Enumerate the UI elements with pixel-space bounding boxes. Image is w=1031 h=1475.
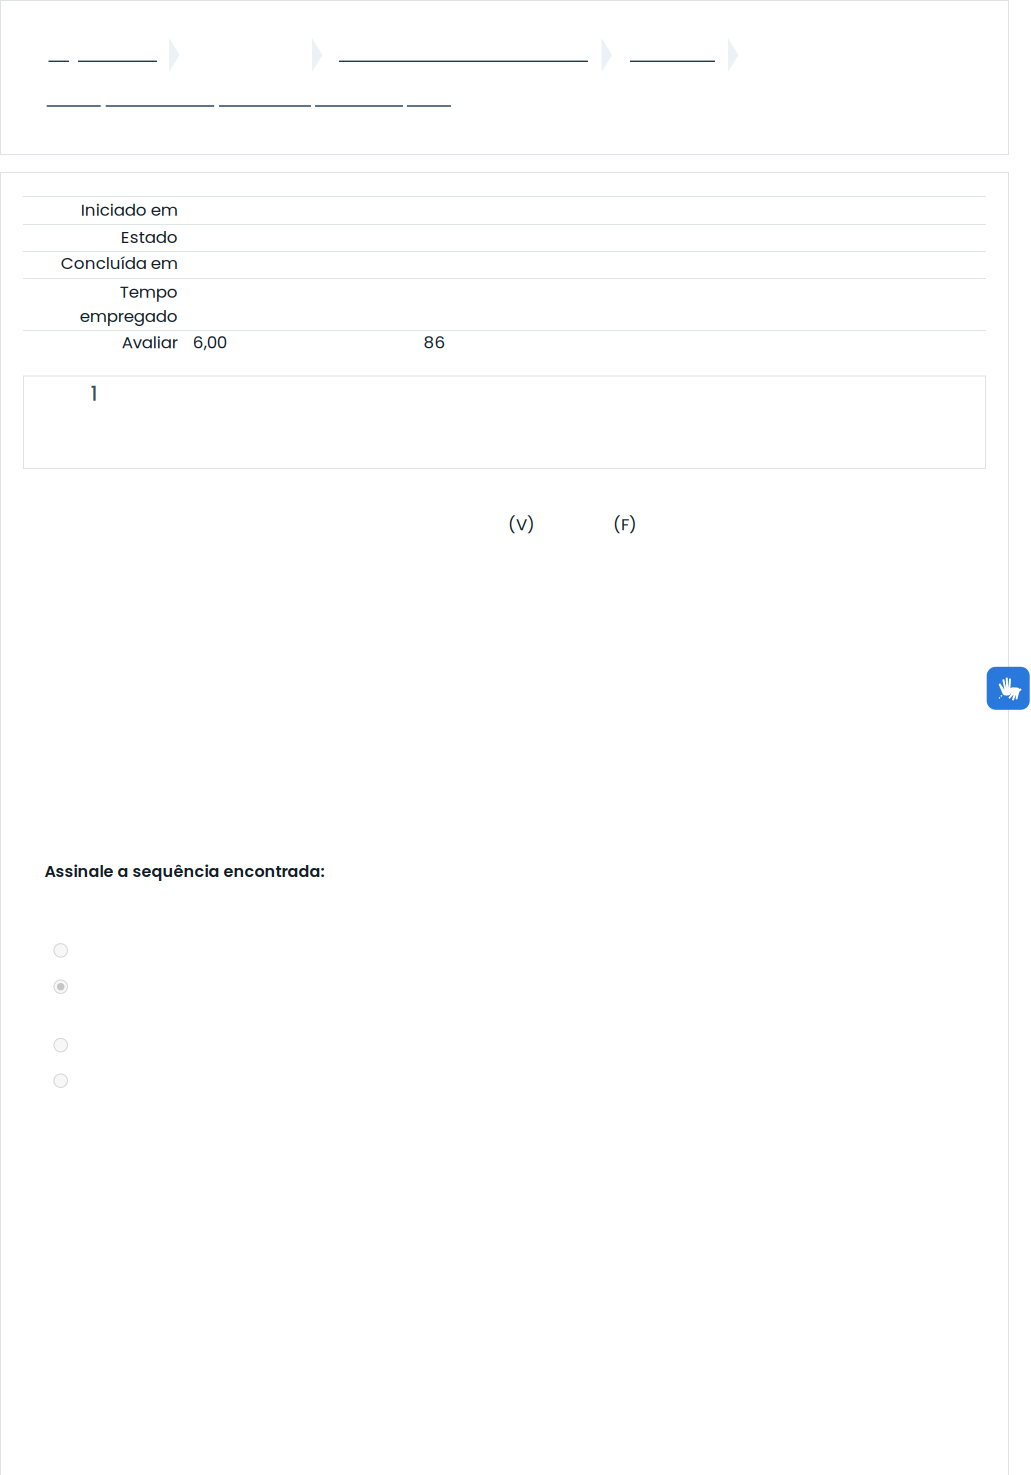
button[interactable]: Answer option bbox=[48, 937, 74, 963]
staticText: empregado bbox=[80, 304, 178, 328]
button[interactable]: Breadcrumb link bbox=[407, 88, 451, 107]
button[interactable]: Breadcrumb link bbox=[219, 88, 311, 107]
button[interactable]: Answer option bbox=[48, 1032, 74, 1058]
staticText: Concluída em bbox=[61, 251, 178, 275]
staticText: 1 bbox=[90, 380, 97, 408]
staticText: Tempo bbox=[120, 280, 178, 303]
button[interactable]: Selected answer option bbox=[48, 974, 74, 1000]
staticText: Iniciado em bbox=[81, 198, 178, 221]
staticText: (F) bbox=[613, 513, 637, 536]
staticText: 86 bbox=[423, 331, 445, 354]
button[interactable]: Breadcrumb link bbox=[630, 43, 715, 62]
button[interactable]: Breadcrumb link bbox=[48, 43, 69, 62]
button[interactable]: Breadcrumb link bbox=[78, 43, 157, 62]
button[interactable]: Breadcrumb link bbox=[47, 88, 101, 107]
staticText: (V) bbox=[508, 513, 535, 536]
button[interactable]: Breadcrumb link bbox=[339, 43, 588, 62]
button[interactable]: VLibras sign-language translator bbox=[987, 667, 1030, 710]
button[interactable]: Breadcrumb link bbox=[106, 88, 214, 107]
staticText: Avaliar bbox=[122, 331, 178, 354]
button[interactable]: Breadcrumb link bbox=[315, 88, 403, 107]
staticText: 6,00 bbox=[193, 331, 227, 354]
staticText: Assinale a sequência encontrada: bbox=[44, 860, 324, 883]
button[interactable]: Answer option bbox=[48, 1068, 74, 1094]
staticText: Estado bbox=[121, 225, 178, 249]
